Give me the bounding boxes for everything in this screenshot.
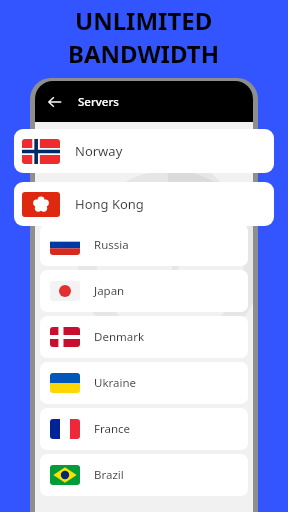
- button[interactable]: Norway: [14, 129, 274, 173]
- staticText: Hong Kong: [75, 195, 144, 213]
- staticText: Russia: [94, 237, 129, 253]
- button[interactable]: Ukraine: [40, 362, 248, 404]
- button[interactable]: Denmark: [40, 316, 248, 358]
- staticText: Norway: [75, 142, 123, 160]
- staticText: Ukraine: [94, 375, 137, 391]
- staticText: UNLIMITED: [75, 4, 213, 37]
- button[interactable]: Russia: [40, 224, 248, 266]
- button[interactable]: France: [40, 408, 248, 450]
- staticText: Servers: [78, 94, 119, 110]
- button[interactable]: Hong Kong: [14, 182, 274, 226]
- button[interactable]: Japan: [40, 270, 248, 312]
- staticText: France: [94, 421, 131, 437]
- staticText: Brazil: [94, 467, 124, 483]
- button[interactable]: Back: [44, 91, 66, 113]
- staticText: Denmark: [94, 329, 145, 345]
- staticText: Japan: [94, 283, 125, 299]
- staticText: BANDWIDTH: [68, 37, 220, 70]
- button[interactable]: Brazil: [40, 454, 248, 496]
